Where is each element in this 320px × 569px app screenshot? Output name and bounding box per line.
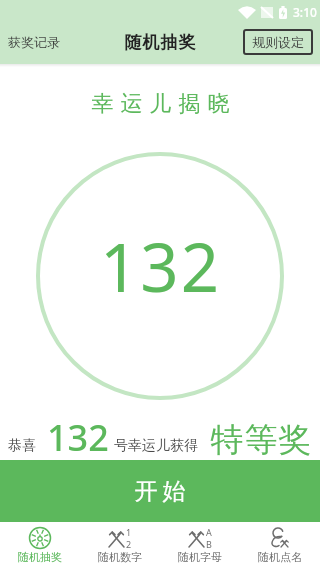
staticText: 132 (47, 413, 109, 462)
button[interactable]: 规则设定 (243, 29, 313, 55)
button[interactable]: A (160, 522, 240, 569)
staticText: 随机抽奖 (124, 32, 196, 53)
staticText: 恭喜 (8, 437, 36, 455)
staticText: B (206, 538, 212, 550)
staticText: 3:10 (293, 4, 317, 20)
staticText: 随机抽奖 (18, 550, 62, 564)
staticText: 号幸运儿获得 (114, 437, 198, 455)
staticText: 获奖记录 (8, 34, 60, 50)
staticText: 随机字母 (178, 550, 222, 564)
staticText: 1 (126, 526, 132, 538)
staticText: A (206, 526, 212, 538)
staticText: 随机数字 (98, 550, 142, 564)
staticText: 132 (100, 220, 221, 311)
button[interactable]: 开始 (0, 460, 320, 522)
staticText: 2 (126, 538, 132, 550)
button[interactable]: 随机点名 (240, 522, 320, 569)
staticText: 幸运儿揭晓 (88, 90, 233, 118)
staticText: 开始 (132, 477, 188, 506)
button[interactable]: 随机抽奖 (0, 522, 80, 569)
staticText: 随机点名 (258, 550, 302, 564)
button[interactable]: 获奖记录 (0, 28, 60, 56)
button[interactable]: 1 (80, 522, 160, 569)
staticText: 特等奖 (210, 419, 312, 461)
staticText: 规则设定 (252, 34, 304, 50)
